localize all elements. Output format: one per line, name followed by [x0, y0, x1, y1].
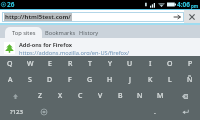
staticText: Ñ [187, 75, 193, 85]
staticText: X [58, 91, 63, 101]
button[interactable]: . [140, 104, 170, 120]
staticText: M [157, 91, 164, 101]
staticText: I [149, 59, 152, 69]
button[interactable]: L [160, 72, 180, 88]
staticText: Add-ons for Firefox [19, 41, 72, 49]
staticText: A [8, 75, 13, 85]
staticText: T [88, 59, 92, 69]
button[interactable]: E [40, 56, 60, 72]
button[interactable]: F [60, 72, 80, 88]
button[interactable]: Bookmarks [42, 27, 79, 38]
button[interactable]: Y [100, 56, 120, 72]
button[interactable]: R [60, 56, 80, 72]
staticText: N [137, 91, 143, 101]
staticText: K [148, 75, 153, 85]
staticText: https://addons.mozilla.org/en-US/firefox… [19, 49, 130, 55]
button[interactable]: I [140, 56, 160, 72]
staticText: 26 [7, 0, 15, 9]
button[interactable]: S [20, 72, 40, 88]
staticText: U [127, 59, 133, 69]
staticText: G [87, 75, 93, 85]
button[interactable]: D [40, 72, 60, 88]
staticText: pm [191, 3, 199, 9]
button[interactable]: M [150, 88, 170, 104]
button[interactable]: K [140, 72, 160, 88]
staticText: ?123 [10, 108, 23, 116]
staticText: H [107, 75, 113, 85]
staticText: F [68, 75, 72, 85]
staticText: 4:06 [177, 0, 190, 9]
staticText: Top sites [12, 29, 36, 37]
staticText: E [48, 59, 52, 69]
button[interactable]: X [50, 88, 70, 104]
staticText: L [168, 75, 172, 85]
button[interactable]: History [79, 27, 99, 38]
button[interactable]: Enter [170, 104, 200, 120]
staticText: C [78, 91, 83, 101]
staticText: History [79, 29, 99, 37]
staticText: D [47, 75, 53, 85]
button[interactable]: Go [170, 12, 184, 22]
staticText: . [154, 107, 156, 117]
button[interactable]: W [20, 56, 40, 72]
staticText: R [68, 59, 73, 69]
button[interactable]: N [130, 88, 150, 104]
staticText: Y [108, 59, 112, 69]
staticText: W [27, 59, 34, 69]
staticText: Q [7, 59, 13, 69]
button[interactable]: V [90, 88, 110, 104]
staticText: J [129, 75, 131, 85]
button[interactable]: Ñ [180, 72, 200, 88]
staticText: S [28, 75, 32, 85]
button[interactable]: Q [0, 56, 20, 72]
button[interactable]: T [80, 56, 100, 72]
button[interactable]: C [70, 88, 90, 104]
button[interactable]: Shift [0, 88, 30, 104]
button[interactable]: ?123 [0, 104, 32, 120]
staticText: V [98, 91, 103, 101]
button[interactable]: Backspace [170, 88, 200, 104]
button[interactable]: P [180, 56, 200, 72]
staticText: http://html5test.com/ [5, 13, 71, 21]
button[interactable]: O [160, 56, 180, 72]
button[interactable]: Z [30, 88, 50, 104]
staticText: Bookmarks [45, 29, 76, 37]
button[interactable]: A [0, 72, 20, 88]
staticText: P [188, 59, 193, 69]
button[interactable]: Stop [184, 10, 200, 23]
staticText: Z [38, 91, 43, 101]
button[interactable]: Emoji [32, 104, 55, 120]
button[interactable]: Top sites [5, 27, 42, 38]
button[interactable]: H [100, 72, 120, 88]
staticText: O [167, 59, 173, 69]
button[interactable]: B [110, 88, 130, 104]
button[interactable]: http://html5test.com/ [2, 12, 170, 22]
button[interactable]: Add-ons for Firefox [0, 38, 200, 56]
button[interactable]: J [120, 72, 140, 88]
button[interactable]: G [80, 72, 100, 88]
staticText: B [118, 91, 123, 101]
button[interactable]: U [120, 56, 140, 72]
